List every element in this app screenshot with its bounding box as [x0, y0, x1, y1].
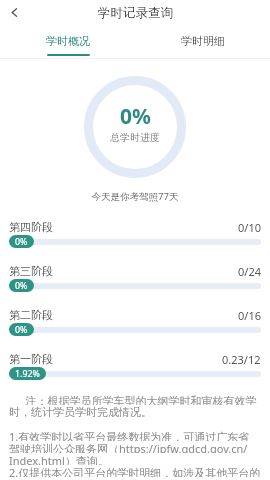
staticText: 学时概况	[46, 34, 90, 48]
staticText: 学时明细	[181, 34, 225, 48]
staticText: 0/16	[238, 308, 261, 321]
staticText: 第四阶段	[9, 220, 53, 233]
button[interactable]: 学时概况	[0, 25, 135, 58]
staticText: 今天是你考驾照77天	[0, 190, 270, 203]
staticText: 1.92%	[15, 368, 40, 380]
staticText: 0%	[15, 280, 28, 292]
staticText: 0.23/12	[222, 352, 261, 365]
button[interactable]: Back	[0, 0, 28, 25]
staticText: 第一阶段	[9, 352, 53, 365]
staticText: 第三阶段	[9, 264, 53, 277]
staticText: 0/24	[238, 264, 261, 277]
staticText: 总学时进度	[110, 131, 160, 144]
staticText: 0%	[120, 102, 151, 131]
staticText: 1.有效学时以省平台最终数据为准，可通过广东省	[9, 429, 250, 441]
staticText: 0%	[15, 236, 28, 248]
button[interactable]: 第二阶段	[9, 308, 261, 352]
button[interactable]: 第三阶段	[9, 264, 261, 308]
staticText: Index.html）查询。	[9, 453, 109, 465]
button[interactable]: 第一阶段	[9, 352, 261, 393]
staticText: 第二阶段	[9, 308, 53, 321]
staticText: 0/10	[238, 220, 261, 233]
staticText: 0%	[15, 324, 28, 336]
staticText: 学时记录查询	[98, 5, 173, 21]
button[interactable]: 第四阶段	[9, 220, 261, 264]
button[interactable]: 学时明细	[135, 25, 270, 58]
staticText: 驾驶培训公众服务网（https://jpfw.gdcd.gov.cn/	[9, 441, 248, 453]
staticText: 2.仅提供本公司平台的学时明细，如涉及其他平台的	[9, 465, 261, 477]
staticText: 时，统计学员学时完成情况。	[9, 405, 152, 417]
staticText: 注：根据学员所学车型的大纲学时和审核有效学	[9, 393, 257, 405]
